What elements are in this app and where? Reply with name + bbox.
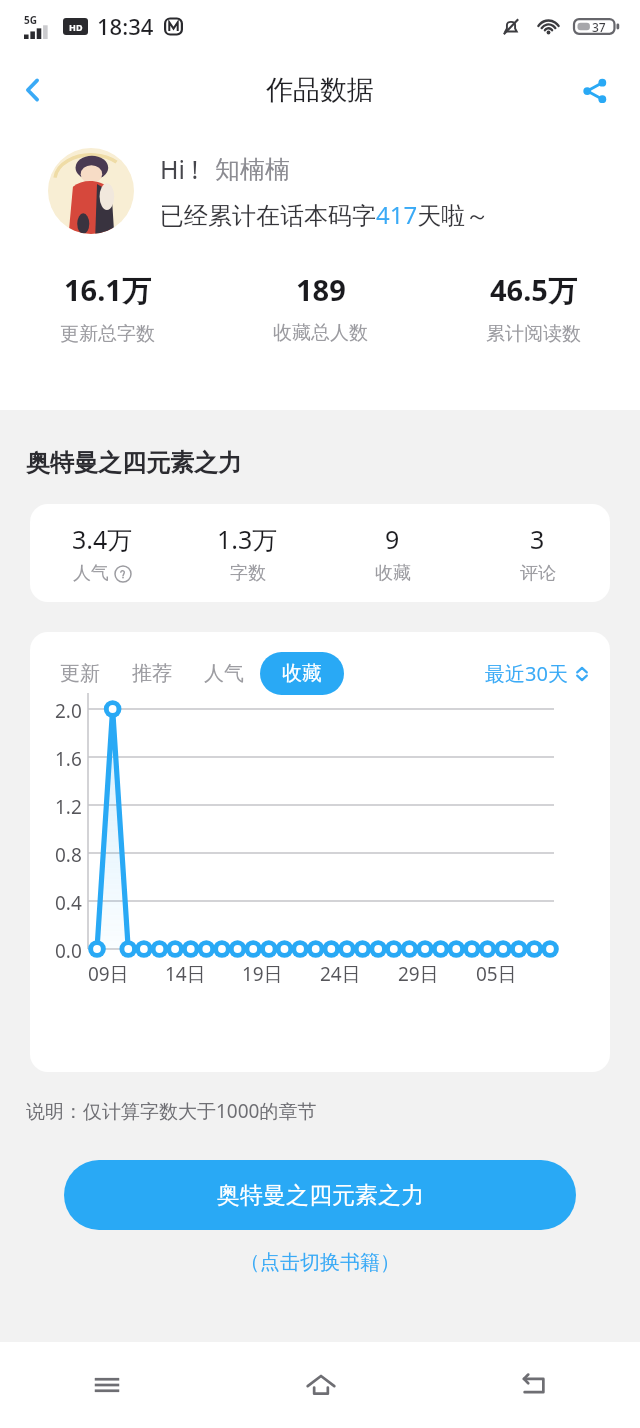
button[interactable]: 人气: [188, 652, 260, 695]
button[interactable]: 最近30天: [485, 660, 596, 687]
button[interactable]: Back: [0, 57, 66, 123]
staticText: 09日: [88, 961, 129, 987]
staticText: 2.0: [55, 698, 82, 724]
staticText: 人气: [204, 661, 244, 686]
button[interactable]: 1.3万: [175, 522, 320, 585]
button[interactable]: Back: [427, 1342, 640, 1428]
button[interactable]: （点击切换书籍）: [230, 1246, 410, 1279]
button[interactable]: 16.1万: [0, 270, 214, 346]
button[interactable]: Home: [214, 1342, 427, 1428]
staticText: 评论: [520, 562, 556, 585]
staticText: 46.5万: [490, 270, 577, 310]
staticText: 3: [530, 522, 545, 556]
button[interactable]: 3.4万: [30, 522, 175, 585]
staticText: 05日: [476, 961, 517, 987]
staticText: 收藏: [375, 562, 411, 585]
staticText: 18:34: [97, 11, 154, 41]
button[interactable]: 9: [320, 522, 465, 585]
staticText: Hi !: [160, 152, 199, 186]
staticText: 3.4万: [72, 522, 133, 556]
staticText: （点击切换书籍）: [240, 1250, 400, 1275]
button[interactable]: 46.5万: [427, 270, 640, 346]
staticText: 24日: [320, 961, 361, 987]
staticText: 说明：仅计算字数大于1000的章节: [26, 1098, 317, 1124]
staticText: 1.3万: [217, 522, 278, 556]
staticText: 0.0: [55, 938, 82, 964]
staticText: 字数: [230, 562, 266, 585]
button[interactable]: Recents: [0, 1342, 214, 1428]
staticText: 9: [385, 522, 400, 556]
staticText: 5G: [24, 13, 37, 27]
button[interactable]: 收藏: [260, 652, 344, 695]
button[interactable]: 更新: [44, 652, 116, 695]
button[interactable]: Share: [564, 60, 624, 120]
staticText: 37: [592, 19, 606, 35]
staticText: 最近30天: [485, 660, 568, 687]
staticText: 14日: [165, 961, 206, 987]
staticText: 1.2: [55, 794, 82, 820]
staticText: 人气: [73, 562, 109, 585]
staticText: 19日: [242, 961, 283, 987]
staticText: 29日: [398, 961, 439, 987]
staticText: 奥特曼之四元素之力: [217, 1181, 424, 1210]
button[interactable]: 3: [465, 522, 610, 585]
staticText: 已经累计在话本码字417天啦～: [160, 198, 490, 231]
staticText: 0.4: [55, 890, 82, 916]
staticText: 累计阅读数: [486, 322, 581, 346]
staticText: 0.8: [55, 842, 82, 868]
button[interactable]: 奥特曼之四元素之力: [64, 1160, 576, 1230]
staticText: 收藏: [282, 661, 322, 686]
button[interactable]: Avatar: [48, 148, 134, 234]
staticText: 推荐: [132, 661, 172, 686]
staticText: 更新: [60, 661, 100, 686]
button[interactable]: 189: [214, 270, 427, 345]
staticText: 作品数据: [266, 73, 374, 107]
button[interactable]: 推荐: [116, 652, 188, 695]
staticText: HD: [69, 21, 83, 33]
staticText: 1.6: [55, 746, 82, 772]
staticText: 奥特曼之四元素之力: [26, 448, 242, 478]
staticText: 更新总字数: [60, 322, 155, 346]
staticText: 知楠楠: [215, 154, 290, 185]
staticText: 收藏总人数: [273, 321, 368, 345]
staticText: 189: [296, 270, 346, 309]
staticText: 16.1万: [64, 270, 151, 310]
